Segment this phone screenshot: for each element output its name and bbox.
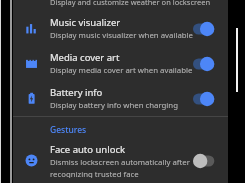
button[interactable]: Battery info — [13, 81, 228, 116]
button[interactable]: Music visualizer on — [193, 20, 219, 38]
button[interactable]: Face auto unlock — [13, 143, 228, 178]
staticText: Battery info — [50, 86, 103, 99]
button[interactable]: Battery info on — [193, 90, 219, 108]
button[interactable]: Music visualizer — [13, 11, 228, 46]
button[interactable]: Media cover art on — [193, 55, 219, 73]
staticText: Display music visualizer when available — [50, 30, 193, 41]
staticText: Face auto unlock — [50, 143, 126, 156]
staticText: Display media cover art when available — [50, 65, 193, 76]
button[interactable]: Face auto unlock off — [193, 152, 219, 170]
staticText: Display and customize weather on lockscr… — [50, 0, 211, 7]
staticText: Gestures — [50, 124, 87, 136]
staticText: Music visualizer — [50, 16, 121, 29]
staticText: recognizing trusted face — [50, 169, 139, 178]
button[interactable]: Media cover art — [13, 46, 228, 81]
staticText: Dismiss lockscreen automatically after — [50, 157, 190, 168]
staticText: Media cover art — [50, 51, 120, 64]
staticText: Display battery info when charging — [50, 100, 178, 111]
